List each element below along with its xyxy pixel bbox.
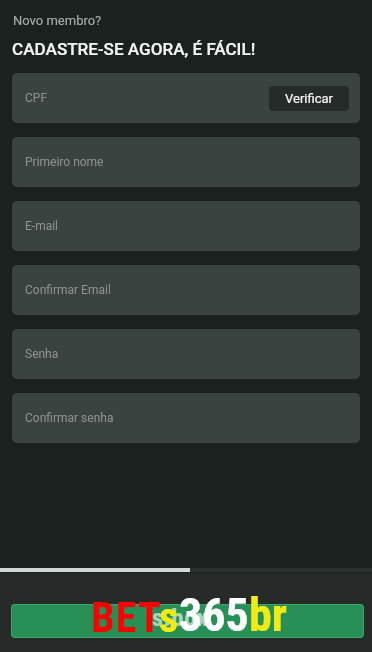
staticText: CADASTRE-SE AGORA, É FÁCIL! [12, 39, 256, 59]
staticText: BET [91, 593, 163, 642]
staticText: 365 [179, 588, 249, 642]
button[interactable]: CPF [12, 73, 360, 123]
staticText: Novo membro? [13, 13, 102, 28]
button[interactable]: Senha [12, 329, 360, 379]
staticText: Confirmar Email [25, 283, 111, 297]
staticText: br [249, 588, 288, 642]
staticText: s.box [152, 604, 209, 632]
staticText: Confirmar senha [25, 411, 114, 425]
button[interactable] [11, 604, 364, 638]
staticText: Primeiro nome [25, 155, 104, 169]
button[interactable]: Confirmar senha [12, 393, 360, 443]
button[interactable]: Verificar [269, 86, 349, 111]
staticText: Verificar [285, 91, 333, 106]
staticText: E-mail [25, 219, 59, 233]
staticText: Senha [25, 347, 59, 361]
button[interactable]: Primeiro nome [12, 137, 360, 187]
staticText: s [159, 593, 179, 642]
button[interactable]: E-mail [12, 201, 360, 251]
button[interactable]: Confirmar Email [12, 265, 360, 315]
staticText: CPF [25, 91, 48, 105]
